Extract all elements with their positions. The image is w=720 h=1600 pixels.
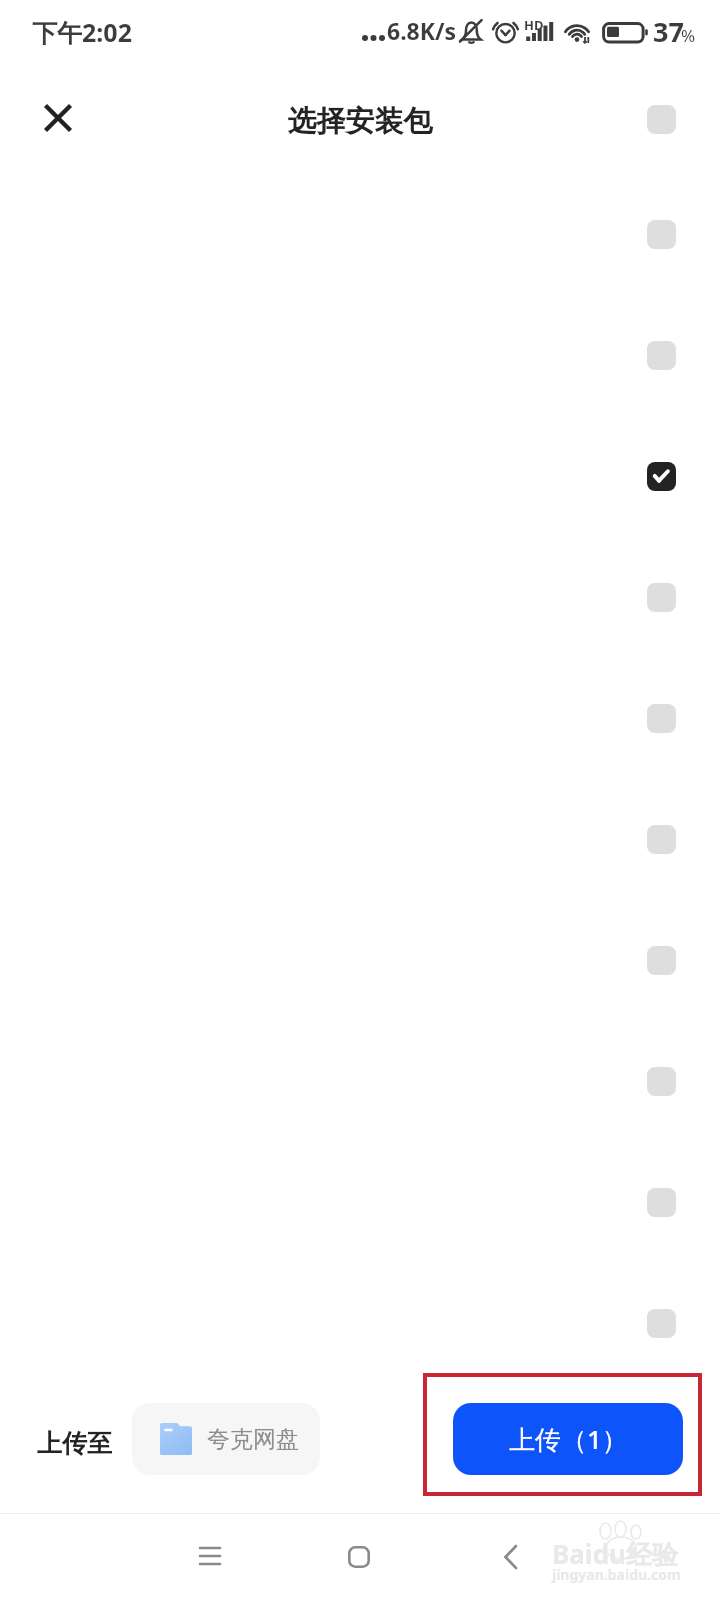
button[interactable]: Select item xyxy=(647,462,676,491)
button[interactable]: Select all xyxy=(647,105,676,134)
button[interactable]: Home xyxy=(329,1527,389,1587)
staticText: jingyan.baidu.com xyxy=(552,1565,681,1584)
staticText: 下午2:02 xyxy=(32,15,132,49)
button[interactable]: Select item xyxy=(647,220,676,249)
staticText: 6.8K/s xyxy=(387,15,457,46)
button[interactable]: Select item xyxy=(647,583,676,612)
button[interactable]: 上传（1） xyxy=(453,1403,683,1475)
staticText: 上传（1） xyxy=(509,1421,628,1457)
button[interactable]: Select item xyxy=(647,946,676,975)
button[interactable]: Select item xyxy=(647,825,676,854)
button[interactable]: Select item xyxy=(647,341,676,370)
button[interactable]: Select item xyxy=(647,1309,676,1338)
button[interactable]: Select item xyxy=(647,1067,676,1096)
button[interactable]: Recent apps xyxy=(180,1527,240,1587)
staticText: Baidu经验 xyxy=(552,1536,678,1572)
staticText: 夸克网盘 xyxy=(207,1425,299,1454)
staticText: 选择安装包 xyxy=(0,103,720,140)
staticText: 上传至 xyxy=(37,1428,112,1459)
staticText: HD xyxy=(524,16,544,34)
staticText: 37 xyxy=(653,13,684,50)
button[interactable]: Back xyxy=(481,1527,541,1587)
staticText: % xyxy=(681,24,696,47)
button[interactable]: Close xyxy=(30,90,86,146)
button[interactable]: Select item xyxy=(647,704,676,733)
button[interactable]: Select item xyxy=(647,1188,676,1217)
button[interactable]: 夸克网盘 xyxy=(132,1403,320,1475)
